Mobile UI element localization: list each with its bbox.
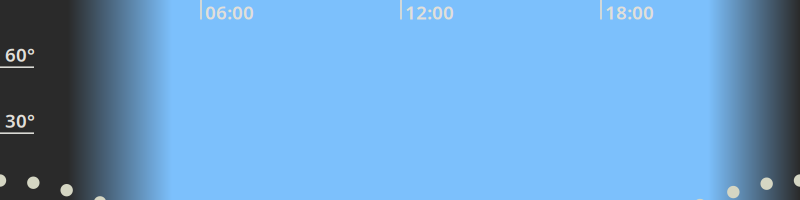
staticText: 12:00 <box>405 0 454 25</box>
staticText: 06:00 <box>205 0 254 25</box>
staticText: 30° <box>5 108 35 133</box>
staticText: 18:00 <box>605 0 654 25</box>
staticText: 60° <box>5 42 35 67</box>
